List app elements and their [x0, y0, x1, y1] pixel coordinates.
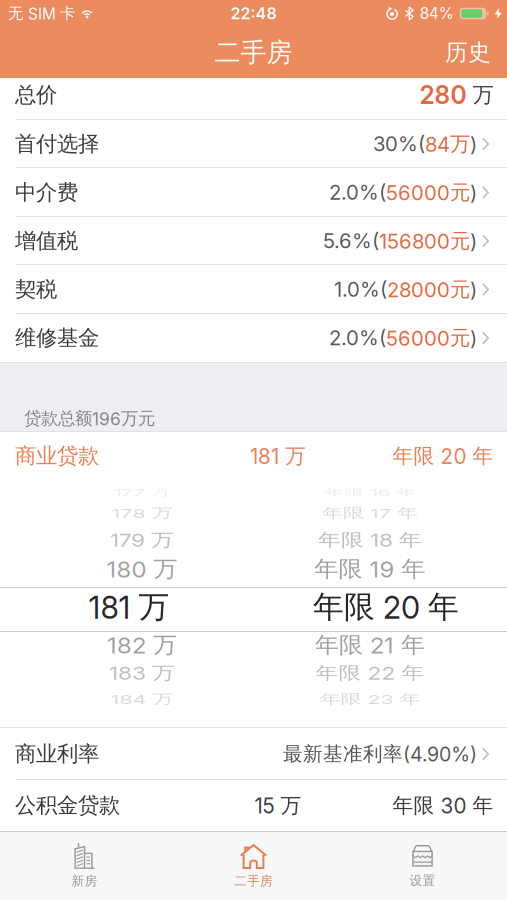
staticText: 180 万	[106, 554, 177, 584]
staticText: 56000元	[386, 180, 470, 205]
staticText: 总价	[15, 82, 57, 108]
staticText: 177 万	[113, 480, 170, 505]
staticText: 万	[466, 82, 493, 108]
staticText: 年限 16 年	[324, 480, 416, 505]
staticText: )	[470, 277, 477, 302]
button[interactable]: 契税	[0, 265, 507, 314]
staticText: 30%(	[373, 132, 425, 156]
staticText: 年限 23 年	[319, 686, 420, 712]
staticText: 28000元	[387, 277, 470, 302]
staticText: 年限 18 年	[318, 526, 422, 554]
staticText: 2.0%(	[329, 180, 386, 205]
button[interactable]: 首付选择	[0, 120, 507, 168]
staticText: 最新基准利率(4.90%)	[283, 742, 477, 766]
staticText: 1.0%(	[334, 277, 387, 302]
staticText: 二手房	[214, 36, 292, 69]
staticText: 15 万	[254, 792, 301, 818]
staticText: 商业利率	[15, 741, 99, 767]
staticText: 维修基金	[15, 325, 99, 351]
staticText: 首付选择	[15, 131, 99, 157]
staticText: 56000元	[386, 325, 470, 351]
staticText: 设置	[409, 872, 435, 888]
staticText: 年限 20 年	[392, 443, 493, 469]
staticText: 无 SIM 卡	[8, 4, 75, 23]
staticText: 2.0%(	[329, 326, 386, 350]
staticText: 280	[419, 80, 466, 110]
staticText: 84万	[425, 131, 470, 157]
staticText: 商业贷款	[15, 443, 99, 469]
staticText: 22:48	[230, 4, 276, 23]
staticText: )	[470, 132, 477, 156]
button[interactable]: 公积金贷款	[0, 780, 507, 831]
staticText: 年限 17 年	[322, 500, 418, 526]
staticText: 年限 22 年	[315, 659, 424, 687]
staticText: 年限 30 年	[392, 792, 493, 818]
staticText: )	[470, 229, 477, 253]
staticText: 178 万	[111, 500, 172, 526]
staticText: 新房	[71, 873, 97, 889]
button[interactable]: 商业贷款	[0, 432, 507, 480]
button[interactable]: 设置	[338, 831, 507, 888]
staticText: 183 万	[109, 659, 175, 687]
staticText: 84%	[420, 4, 454, 23]
staticText: 公积金贷款	[15, 792, 120, 819]
staticText: 中介费	[15, 179, 78, 206]
staticText: 年限 21 年	[315, 630, 425, 660]
staticText: 年限 19 年	[314, 554, 425, 584]
staticText: 181 万	[250, 443, 306, 469]
staticText: 增值税	[15, 228, 78, 254]
staticText: )	[470, 180, 477, 205]
staticText: 184 万	[110, 686, 173, 712]
staticText: 181 万	[88, 588, 169, 626]
button[interactable]: 历史	[445, 38, 507, 67]
staticText: 179 万	[110, 526, 174, 554]
button[interactable]: 增值税	[0, 217, 507, 265]
staticText: 契税	[15, 276, 57, 303]
staticText: 182 万	[107, 630, 177, 660]
button[interactable]: 二手房	[169, 831, 338, 889]
button[interactable]: 新房	[0, 831, 169, 889]
button[interactable]: 商业利率	[0, 728, 507, 780]
staticText: 156800元	[379, 228, 470, 254]
staticText: 二手房	[234, 873, 273, 889]
staticText: 贷款总额196万元	[24, 408, 155, 429]
staticText: 历史	[445, 38, 491, 67]
staticText: 年限 20 年	[313, 588, 459, 626]
staticText: 5.6%(	[323, 229, 379, 253]
button[interactable]: 中介费	[0, 168, 507, 217]
button[interactable]: 维修基金	[0, 314, 507, 362]
button[interactable]: 总价	[0, 78, 507, 120]
staticText: )	[470, 326, 477, 350]
